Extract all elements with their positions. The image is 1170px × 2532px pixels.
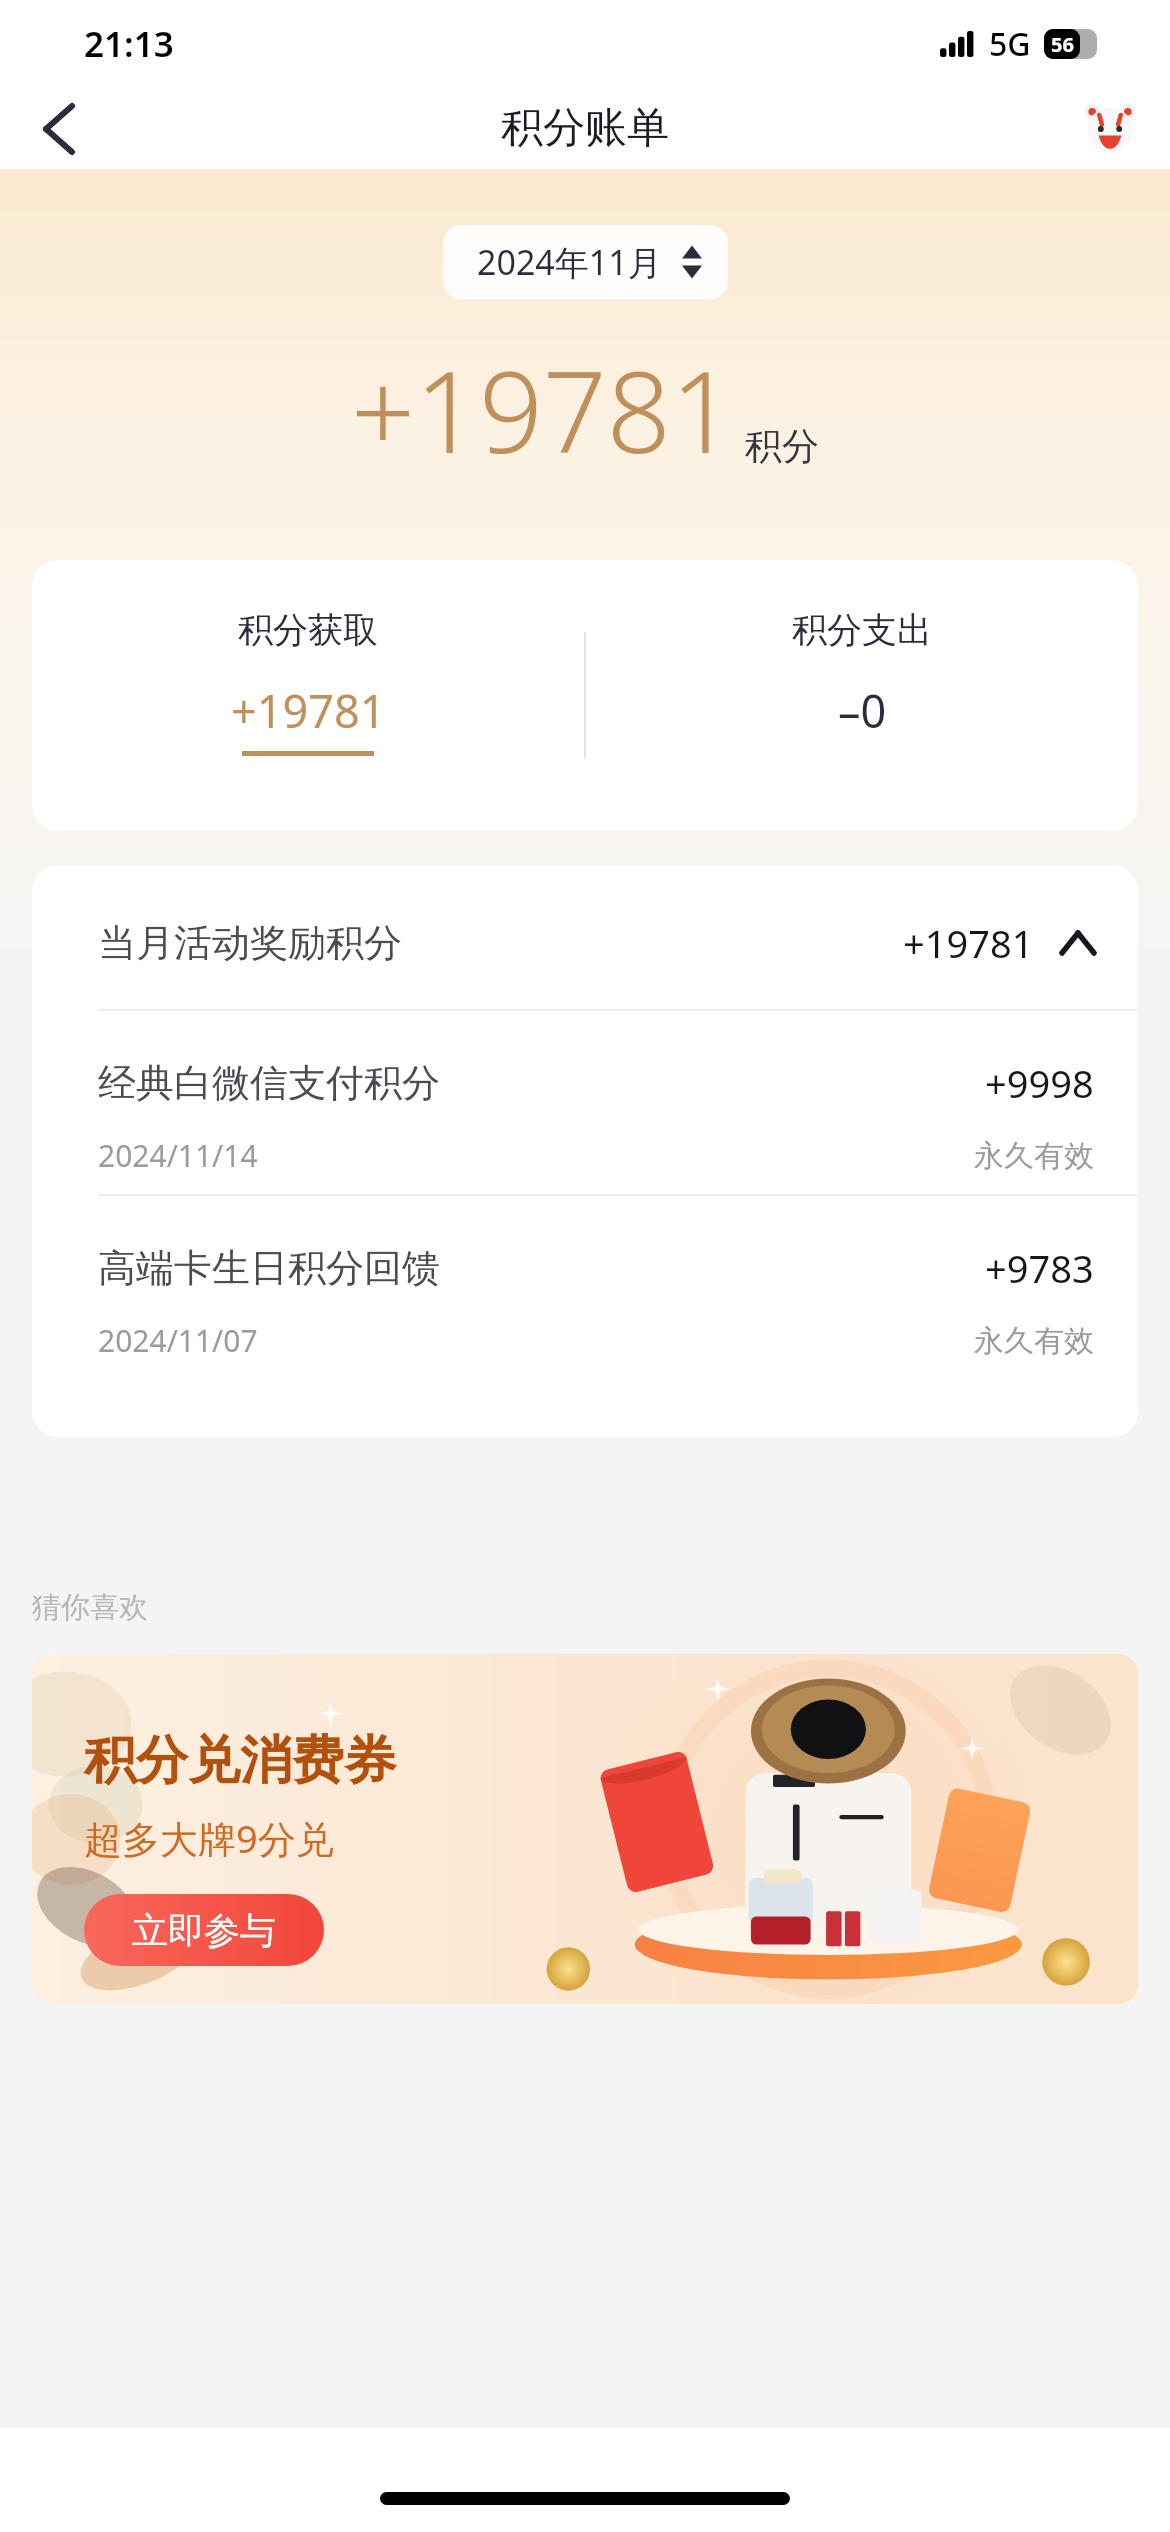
staticText: +9783 [985,1242,1094,1294]
staticText: 积分 [745,423,819,470]
button[interactable]: 经典白微信支付积分 [32,1011,1138,1194]
staticText: 经典白微信支付积分 [98,1059,440,1107]
button[interactable]: 当月活动奖励积分 [32,865,1138,1009]
button[interactable]: 积分获取 [32,560,584,831]
staticText: 超多大牌9分兑 [84,1812,334,1864]
staticText: 21:13 [84,20,174,68]
button[interactable]: 高端卡生日积分回馈 [32,1196,1138,1379]
staticText: 立即参与 [132,1908,276,1953]
staticText: 5G [989,22,1031,66]
staticText: 猜你喜欢 [32,1589,148,1626]
staticText: +19781 [351,333,735,486]
button[interactable]: 积分兑消费券 [32,1654,1138,2004]
staticText: 积分获取 [238,608,378,652]
staticText: +19781 [231,680,386,741]
staticText: 积分支出 [792,608,932,652]
button[interactable]: 积分支出 [586,560,1138,831]
button[interactable]: 立即参与 [84,1894,324,1966]
staticText: +19781 [903,917,1034,969]
button[interactable]: Service mascot [1078,97,1142,161]
staticText: 2024年11月 [477,239,662,285]
other: Collapse section [1062,933,1094,953]
staticText: 积分兑消费券 [84,1728,396,1794]
staticText: –0 [838,680,887,741]
staticText: 2024/11/14 [98,1135,258,1176]
staticText: +9998 [985,1057,1094,1109]
staticText: 永久有效 [974,1322,1094,1360]
staticText: 积分账单 [501,102,669,155]
staticText: 当月活动奖励积分 [98,919,402,967]
button[interactable]: 2024年11月 [443,225,728,299]
button[interactable]: Back [20,90,98,168]
staticText: 高端卡生日积分回馈 [98,1244,440,1292]
staticText: 永久有效 [974,1137,1094,1175]
staticText: 56 [1051,31,1074,58]
staticText: 2024/11/07 [98,1320,258,1361]
